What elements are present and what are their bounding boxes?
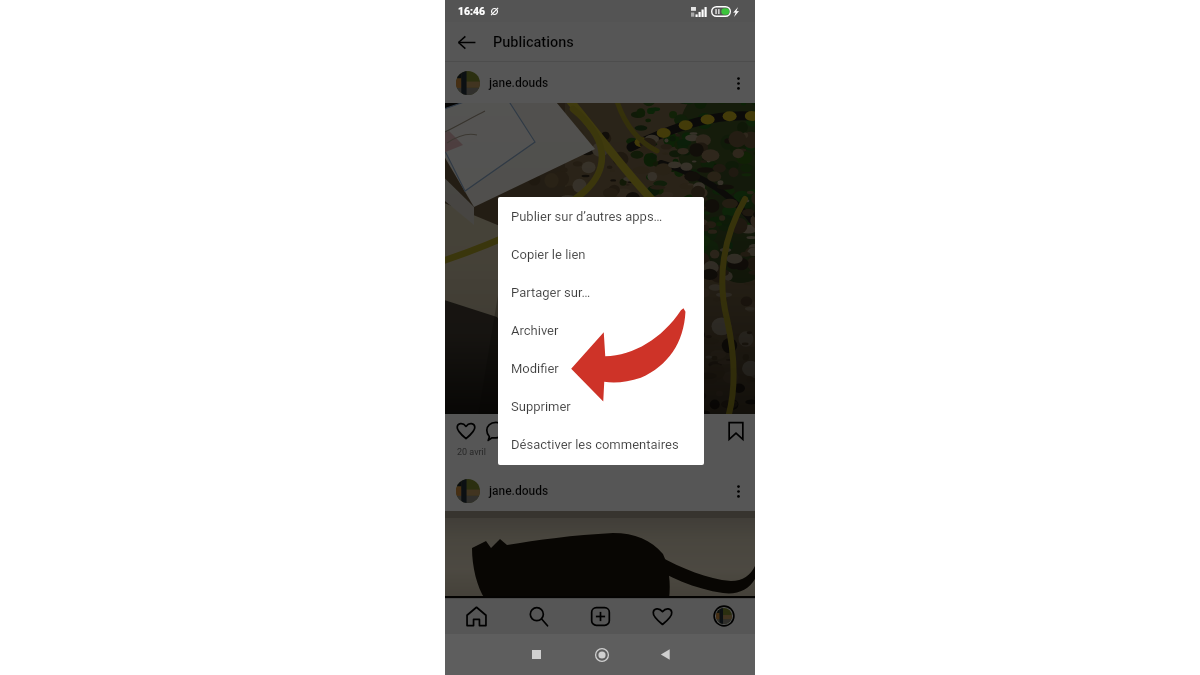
button[interactable]: More options	[721, 474, 755, 508]
button[interactable]: Save	[721, 416, 751, 446]
staticText: jane.douds	[489, 484, 549, 498]
button[interactable]: Recents	[514, 634, 558, 675]
staticText: Partager sur…	[511, 285, 591, 300]
button[interactable]	[456, 71, 480, 95]
staticText: Publier sur d’autres apps…	[511, 209, 663, 224]
button[interactable]: Home	[445, 598, 507, 634]
button[interactable]: Search	[507, 598, 569, 634]
button[interactable]: More options	[721, 66, 755, 100]
button[interactable]	[456, 479, 480, 503]
staticText: jane.douds	[489, 76, 549, 90]
staticText: Copier le lien	[511, 247, 586, 262]
staticText: Archiver	[511, 323, 559, 338]
button[interactable]: Comment	[481, 416, 511, 446]
button[interactable]: Back	[448, 24, 484, 60]
button[interactable]: Home	[580, 634, 624, 675]
button[interactable]: Désactiver les commentaires	[498, 426, 704, 464]
button[interactable]: Activity	[631, 598, 693, 634]
staticText: 20 avril	[457, 447, 486, 458]
button[interactable]: Profile	[693, 598, 755, 634]
staticText: Modifier	[511, 361, 559, 376]
button[interactable]: Partager sur…	[498, 274, 704, 312]
button[interactable]: Archiver	[498, 312, 704, 350]
button[interactable]: Copier le lien	[498, 236, 704, 274]
button[interactable]: Like	[451, 416, 481, 446]
button[interactable]: Modifier	[498, 350, 704, 388]
button[interactable]: Publier sur d’autres apps…	[498, 198, 704, 236]
button[interactable]: Create	[569, 598, 631, 634]
staticText: Désactiver les commentaires	[511, 437, 679, 452]
button[interactable]: Back	[643, 634, 687, 675]
staticText: Supprimer	[511, 399, 571, 414]
staticText: 16:46	[458, 5, 486, 17]
button[interactable]: Supprimer	[498, 388, 704, 426]
staticText: Publications	[493, 34, 574, 51]
button[interactable]: Share	[511, 416, 541, 446]
